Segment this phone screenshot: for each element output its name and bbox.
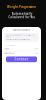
staticText: 135 lbs xyxy=(34,48,39,50)
button[interactable]: Squat xyxy=(4,47,39,51)
staticText: Continue xyxy=(14,57,28,61)
staticText: Bench Press xyxy=(4,52,14,54)
button[interactable]: Continue xyxy=(6,56,37,62)
staticText: Automatically Calculated for You xyxy=(8,12,35,19)
staticText: STARTING WEIGHT xyxy=(4,44,16,46)
staticText: 95 lbs xyxy=(35,52,39,54)
button[interactable]: Bench Press xyxy=(4,51,39,55)
staticText: Adjust the starting load below if needed… xyxy=(6,39,30,40)
staticText: Squat xyxy=(4,48,8,50)
staticText: Weight Progression xyxy=(7,5,36,9)
staticText: Your working weight increases a little e… xyxy=(6,34,35,38)
staticText: How Progression Works xyxy=(12,29,30,31)
